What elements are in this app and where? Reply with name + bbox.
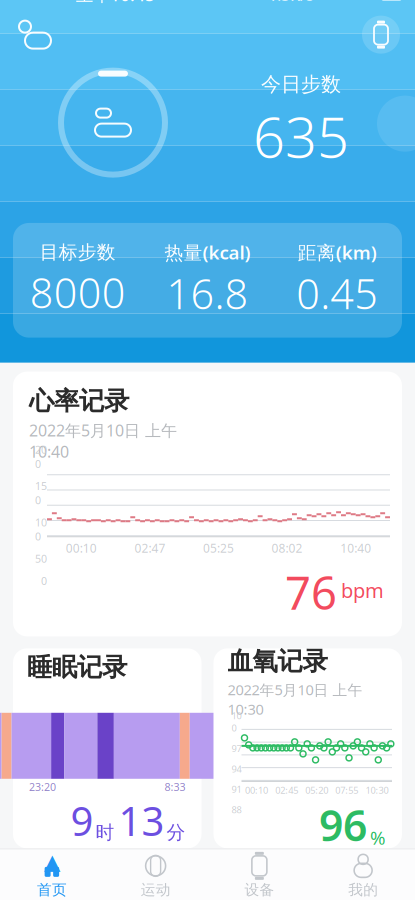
staticText: 设备 xyxy=(244,881,274,899)
staticText: 9 xyxy=(70,794,93,847)
staticText: 88 xyxy=(231,803,241,816)
button[interactable]: 心率记录 xyxy=(13,372,402,636)
staticText: 02:45 xyxy=(275,784,298,796)
staticText: 首页 xyxy=(37,881,67,899)
staticText: 上午10:45 xyxy=(76,0,155,6)
staticText: 76 xyxy=(285,562,337,622)
button[interactable]: 设备 xyxy=(207,849,311,900)
staticText: 96 xyxy=(319,796,367,853)
button[interactable]: ▲ xyxy=(0,849,104,900)
staticText: 热量(kcal) xyxy=(164,240,250,265)
button[interactable]: 运动 xyxy=(104,849,208,900)
button[interactable]: 我的 xyxy=(311,849,415,900)
staticText: 13 xyxy=(118,794,164,847)
staticText: % xyxy=(370,825,386,850)
staticText: 运动 xyxy=(141,881,171,899)
staticText: 150 xyxy=(35,479,47,507)
staticText: 91 xyxy=(231,783,241,795)
staticText: 16.8 xyxy=(166,266,248,321)
staticText: 0.45 xyxy=(296,266,378,321)
staticText: 200 xyxy=(35,442,47,471)
staticText: 10:30 xyxy=(365,784,388,796)
button[interactable]: 血氧记录 xyxy=(213,648,402,848)
staticText: 睡眠记录 xyxy=(27,652,127,683)
button[interactable]: 睡眠记录 xyxy=(13,648,201,848)
staticText: 距离(km) xyxy=(298,240,377,265)
staticText: 我的 xyxy=(348,881,378,899)
staticText: 时 xyxy=(95,821,114,844)
staticText: 8:33 xyxy=(164,780,185,794)
staticText: 05:20 xyxy=(305,784,328,796)
staticText: 08:02 xyxy=(272,540,303,556)
staticText: 100 xyxy=(231,709,241,734)
staticText: 05:25 xyxy=(203,540,234,556)
staticText: ▲ xyxy=(44,850,60,874)
staticText: 100 xyxy=(35,515,47,543)
staticText: 1.3K/s xyxy=(268,0,314,5)
staticText: 8000 xyxy=(30,265,126,320)
staticText: 97 xyxy=(231,742,241,755)
staticText: 2022年5月10日 上午10:40 xyxy=(29,420,177,462)
staticText: 02:47 xyxy=(134,540,165,556)
staticText: 血氧记录 xyxy=(227,646,327,677)
staticText: 23:20 xyxy=(29,780,56,794)
button[interactable]: 我的设备 xyxy=(359,13,403,57)
staticText: 心率记录 xyxy=(29,386,129,417)
staticText: 00:10 xyxy=(245,784,268,796)
staticText: 0 xyxy=(41,574,47,588)
staticText: 目标步数 xyxy=(40,241,116,264)
staticText: 635 xyxy=(253,99,349,173)
staticText: 2022年5月10日 上午10:30 xyxy=(227,680,362,719)
button[interactable]: 天气 xyxy=(12,13,56,57)
staticText: 50 xyxy=(35,551,47,566)
staticText: 07:55 xyxy=(335,784,358,796)
staticText: 10:40 xyxy=(340,540,371,556)
staticText: bpm xyxy=(341,577,384,604)
staticText: 分 xyxy=(166,821,185,844)
staticText: 00:10 xyxy=(66,540,97,556)
staticText: 94 xyxy=(231,763,241,775)
staticText: 今日步数 xyxy=(261,72,341,97)
